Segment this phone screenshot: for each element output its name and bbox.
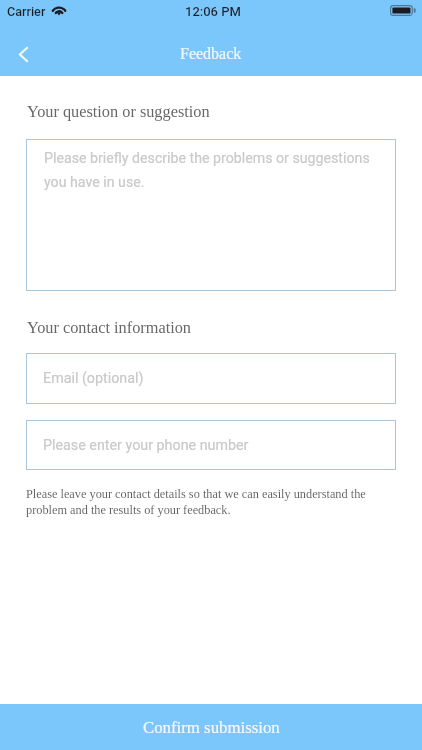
button[interactable]: Email (optional) xyxy=(26,353,396,404)
staticText: Your contact information xyxy=(27,318,192,336)
staticText: Feedback xyxy=(180,45,242,63)
staticText: Email (optional) xyxy=(43,370,144,387)
staticText: Carrier xyxy=(7,4,46,19)
staticText: Please leave your contact details so tha… xyxy=(26,487,396,516)
button[interactable]: Confirm submission xyxy=(0,704,422,750)
staticText: Please enter your phone number xyxy=(43,437,249,454)
button[interactable]: Please briefly describe the problems or … xyxy=(26,139,396,291)
staticText: 12:06 PM xyxy=(185,4,241,19)
staticText: Your question or suggestion xyxy=(27,102,210,120)
staticText: Please briefly describe the problems or … xyxy=(44,150,386,191)
button[interactable]: Back xyxy=(0,32,46,76)
staticText: Confirm submission xyxy=(143,718,280,737)
button[interactable]: Please enter your phone number xyxy=(26,420,396,470)
